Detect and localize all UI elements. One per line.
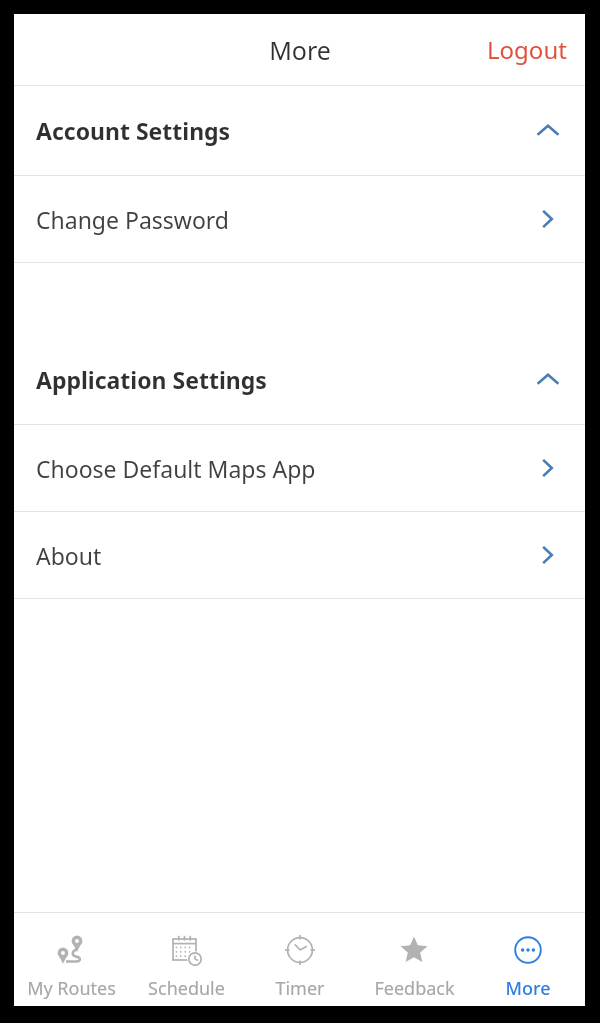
other: Open About (535, 543, 559, 567)
staticText: Choose Default Maps App (36, 453, 535, 484)
button[interactable]: Schedule (129, 919, 243, 1001)
other: Collapse Account Settings (535, 118, 561, 144)
button[interactable]: Feedback (357, 919, 471, 1001)
staticText: About (36, 540, 535, 571)
button[interactable]: Application Settings (14, 335, 585, 424)
button[interactable]: Choose Default Maps App (14, 425, 585, 511)
other: Open Change Password (535, 207, 559, 231)
other: Open Choose Default Maps App (535, 456, 559, 480)
staticText: My Routes (27, 976, 116, 1001)
button[interactable]: More (471, 919, 585, 1001)
staticText: Logout (487, 33, 567, 66)
staticText: Change Password (36, 204, 535, 235)
button[interactable]: Change Password (14, 176, 585, 262)
other: Collapse Application Settings (535, 367, 561, 393)
staticText: More (269, 33, 331, 67)
staticText: Application Settings (36, 364, 535, 395)
button[interactable]: My Routes (14, 919, 129, 1001)
button[interactable]: Account Settings (14, 86, 585, 175)
staticText: Schedule (148, 976, 225, 1001)
button[interactable]: About (14, 512, 585, 598)
button[interactable]: Timer (243, 919, 357, 1001)
button[interactable]: Logout (469, 21, 585, 78)
staticText: Feedback (374, 976, 455, 1001)
staticText: Account Settings (36, 115, 535, 146)
staticText: Timer (275, 976, 325, 1001)
staticText: More (505, 976, 551, 1001)
